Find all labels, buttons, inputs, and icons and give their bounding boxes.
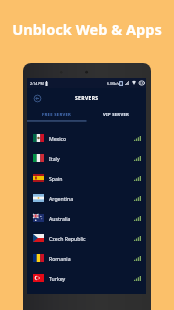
button[interactable]: Mexico	[27, 128, 146, 148]
staticText: 6.0Kb/s	[107, 81, 120, 86]
staticText: Australia	[49, 215, 71, 222]
staticText: FREE SERVER	[42, 112, 72, 118]
button[interactable]: FREE SERVER	[27, 109, 86, 120]
button[interactable]: Back	[32, 93, 43, 104]
staticText: 2:14 PM	[30, 81, 44, 86]
staticText: VIP SERVER	[103, 112, 130, 118]
staticText: Unblock Web & Apps	[12, 19, 162, 39]
button[interactable]: Argentina	[27, 188, 146, 208]
staticText: Spain	[49, 175, 63, 182]
button[interactable]: Czech Republic	[27, 228, 146, 248]
staticText: Argentina	[49, 195, 74, 202]
button[interactable]: VIP SERVER	[86, 109, 146, 120]
button[interactable]: Turkey	[27, 268, 146, 288]
button[interactable]: Spain	[27, 168, 146, 188]
staticText: Czech Republic	[49, 235, 86, 242]
button[interactable]: Italy	[27, 148, 146, 168]
button[interactable]: Australia	[27, 208, 146, 228]
staticText: Mexico	[49, 135, 67, 142]
staticText: SERVERS	[75, 95, 99, 102]
staticText: Romania	[49, 255, 71, 262]
staticText: Italy	[49, 155, 60, 162]
button[interactable]: Romania	[27, 248, 146, 268]
staticText: Turkey	[49, 275, 66, 282]
